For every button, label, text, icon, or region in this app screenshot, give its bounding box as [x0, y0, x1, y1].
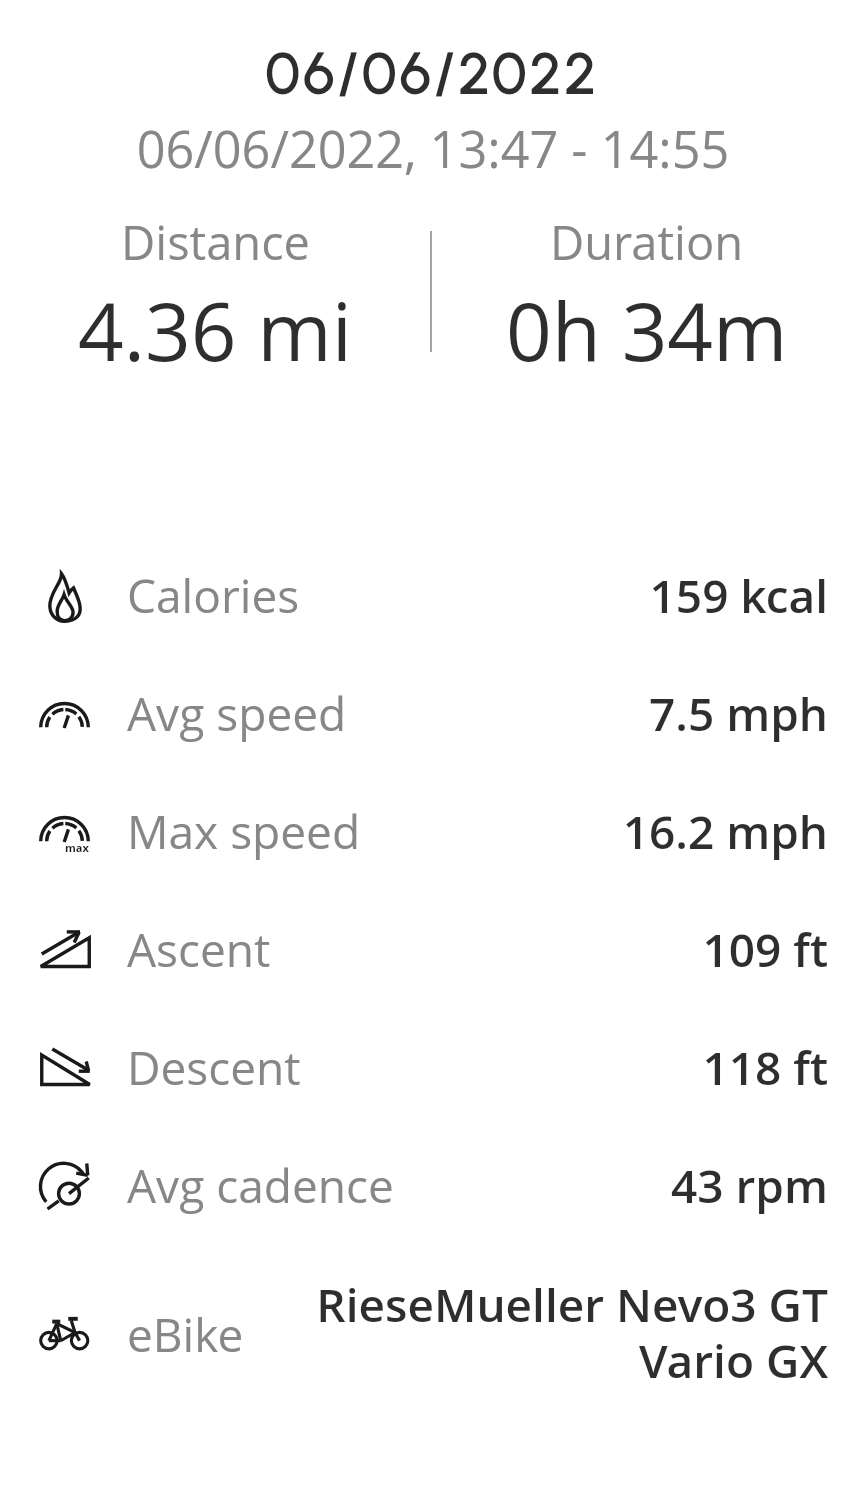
other: Average speed	[39, 702, 90, 729]
staticText: Avg cadence	[127, 1154, 394, 1217]
staticText: 109 ft	[281, 918, 828, 981]
staticText: 118 ft	[311, 1036, 828, 1099]
button[interactable]: Average speed	[0, 654, 862, 772]
button[interactable]: Distance	[0, 210, 430, 384]
staticText: 16.2 mph	[371, 800, 828, 863]
staticText: 06/06/2022, 13:47 - 14:55	[2, 114, 862, 183]
staticText: RieseMueller Nevo3 GT Vario GX	[254, 1273, 828, 1391]
staticText: Descent	[127, 1036, 301, 1099]
other: Descent	[41, 1049, 91, 1085]
other: eBike	[40, 1318, 90, 1351]
button[interactable]: eBike	[0, 1244, 862, 1425]
button[interactable]: Calories	[0, 536, 862, 654]
button[interactable]: Max speed	[0, 772, 862, 890]
staticText: Avg speed	[127, 682, 347, 745]
staticText: 06/06/2022	[2, 40, 862, 120]
other: Calories	[48, 572, 83, 623]
button[interactable]: Average cadence	[0, 1126, 862, 1244]
other: Ascent	[40, 931, 90, 967]
staticText: eBike	[127, 1303, 244, 1366]
staticText: 159 kcal	[310, 564, 828, 627]
button[interactable]: Duration	[432, 210, 862, 384]
staticText: Ascent	[127, 918, 271, 981]
staticText: 4.36 mi	[78, 275, 352, 384]
other: Max speed	[39, 816, 90, 853]
button[interactable]: Descent	[0, 1008, 862, 1126]
staticText: Duration	[550, 210, 744, 274]
staticText: 7.5 mph	[357, 682, 828, 745]
staticText: max	[65, 840, 89, 855]
button[interactable]: Ascent	[0, 890, 862, 1008]
staticText: 43 rpm	[404, 1154, 828, 1217]
staticText: 0h 34m	[506, 275, 788, 384]
staticText: Distance	[121, 210, 310, 274]
staticText: Calories	[127, 564, 300, 627]
staticText: Max speed	[127, 800, 361, 863]
other: Average cadence	[39, 1162, 89, 1209]
